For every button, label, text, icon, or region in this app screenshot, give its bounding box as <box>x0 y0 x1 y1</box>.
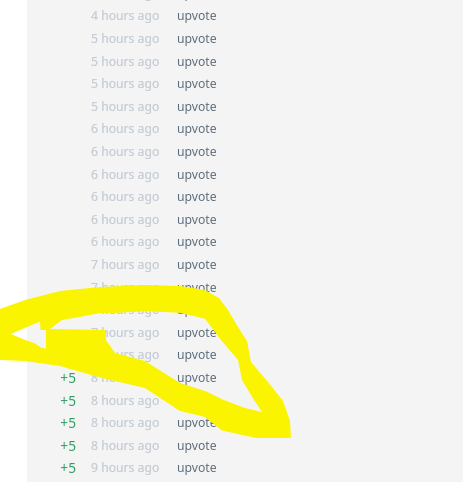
button[interactable]: 5 hours ago <box>0 73 463 482</box>
button[interactable]: 5 hours ago <box>0 51 463 482</box>
staticText: 5 hours ago <box>91 53 160 70</box>
staticText: 6 hours ago <box>91 120 160 137</box>
staticText: upvote <box>177 143 217 160</box>
staticText: 7 hours ago <box>91 324 160 341</box>
staticText: +5 <box>60 458 76 477</box>
button[interactable]: 6 hours ago <box>0 118 463 482</box>
staticText: upvote <box>177 369 217 386</box>
staticText: upvote <box>177 414 217 431</box>
button[interactable]: +5 <box>0 367 463 482</box>
staticText: 7 hours ago <box>91 301 160 318</box>
staticText: 6 hours ago <box>91 166 160 183</box>
staticText: upvote <box>177 301 217 318</box>
staticText: upvote <box>177 459 217 476</box>
staticText: upvote <box>177 0 217 2</box>
button[interactable]: 6 hours ago <box>0 231 463 482</box>
button[interactable]: 6 hours ago <box>0 209 463 482</box>
staticText: upvote <box>177 98 217 115</box>
staticText: +5 <box>60 413 76 432</box>
staticText: upvote <box>177 279 217 296</box>
staticText: 8 hours ago <box>91 346 160 363</box>
staticText: upvote <box>177 346 217 363</box>
button[interactable]: 7 hours ago <box>0 299 463 482</box>
staticText: 6 hours ago <box>91 233 160 250</box>
staticText: 5 hours ago <box>91 98 160 115</box>
staticText: upvote <box>177 7 217 24</box>
button[interactable]: 5 hours ago <box>0 96 463 482</box>
staticText: 5 hours ago <box>91 75 160 92</box>
staticText: upvote <box>177 30 217 47</box>
staticText: 3 hours ago <box>91 0 160 2</box>
button[interactable]: 6 hours ago <box>0 141 463 482</box>
staticText: 8 hours ago <box>91 369 160 386</box>
staticText: upvote <box>177 324 217 341</box>
staticText: upvote <box>177 188 217 205</box>
staticText: 8 hours ago <box>91 392 160 409</box>
button[interactable]: +5 <box>0 390 463 482</box>
button[interactable]: 5 hours ago <box>0 28 463 482</box>
button[interactable]: 6 hours ago <box>0 186 463 482</box>
staticText: upvote <box>177 437 217 454</box>
button[interactable]: 7 hours ago <box>0 322 463 482</box>
staticText: upvote <box>177 392 217 409</box>
button[interactable]: 4 hours ago <box>0 5 463 482</box>
staticText: 8 hours ago <box>91 414 160 431</box>
button[interactable]: 6 hours ago <box>0 164 463 482</box>
staticText: +5 <box>60 368 76 387</box>
button[interactable]: +5 <box>0 435 463 482</box>
button[interactable]: +5 <box>0 457 463 482</box>
staticText: upvote <box>177 256 217 273</box>
staticText: upvote <box>177 53 217 70</box>
button[interactable]: +5 <box>0 412 463 482</box>
staticText: upvote <box>177 233 217 250</box>
staticText: 7 hours ago <box>91 256 160 273</box>
staticText: +5 <box>60 391 76 410</box>
staticText: 6 hours ago <box>91 211 160 228</box>
staticText: 5 hours ago <box>91 30 160 47</box>
staticText: 8 hours ago <box>91 437 160 454</box>
staticText: upvote <box>177 120 217 137</box>
button[interactable]: 7 hours ago <box>0 277 463 482</box>
button[interactable]: 7 hours ago <box>0 254 463 482</box>
staticText: upvote <box>177 211 217 228</box>
staticText: 6 hours ago <box>91 188 160 205</box>
staticText: 7 hours ago <box>91 279 160 296</box>
staticText: 9 hours ago <box>91 459 160 476</box>
staticText: 4 hours ago <box>91 7 160 24</box>
staticText: upvote <box>177 166 217 183</box>
staticText: +5 <box>60 436 76 455</box>
button[interactable]: 3 hours ago <box>0 0 463 465</box>
staticText: 6 hours ago <box>91 143 160 160</box>
button[interactable]: +1 <box>0 344 463 482</box>
staticText: upvote <box>177 75 217 92</box>
